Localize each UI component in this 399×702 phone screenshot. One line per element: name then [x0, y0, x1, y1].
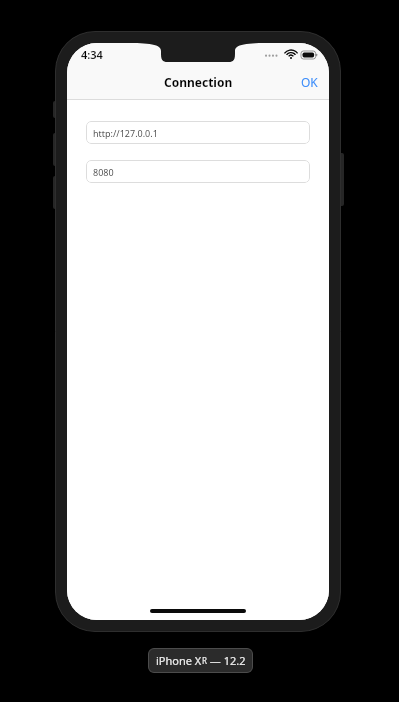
button[interactable]: OK — [290, 67, 329, 97]
staticText: http://127.0.0.1 — [93, 127, 158, 139]
staticText: R — [202, 655, 207, 666]
staticText: Connection — [164, 74, 233, 90]
staticText: 8080 — [93, 166, 114, 178]
staticText: — 12.2 — [207, 653, 246, 668]
button[interactable]: iPhone X — [148, 648, 253, 673]
other: Cellular signal — [265, 51, 281, 59]
other: Battery — [301, 51, 318, 59]
staticText: iPhone X — [156, 653, 202, 668]
other: Wi-Fi — [285, 50, 297, 59]
staticText: 4:34 — [81, 47, 103, 62]
staticText: OK — [301, 74, 318, 90]
button[interactable]: http://127.0.0.1 — [86, 121, 310, 144]
button[interactable]: 8080 — [86, 160, 310, 183]
